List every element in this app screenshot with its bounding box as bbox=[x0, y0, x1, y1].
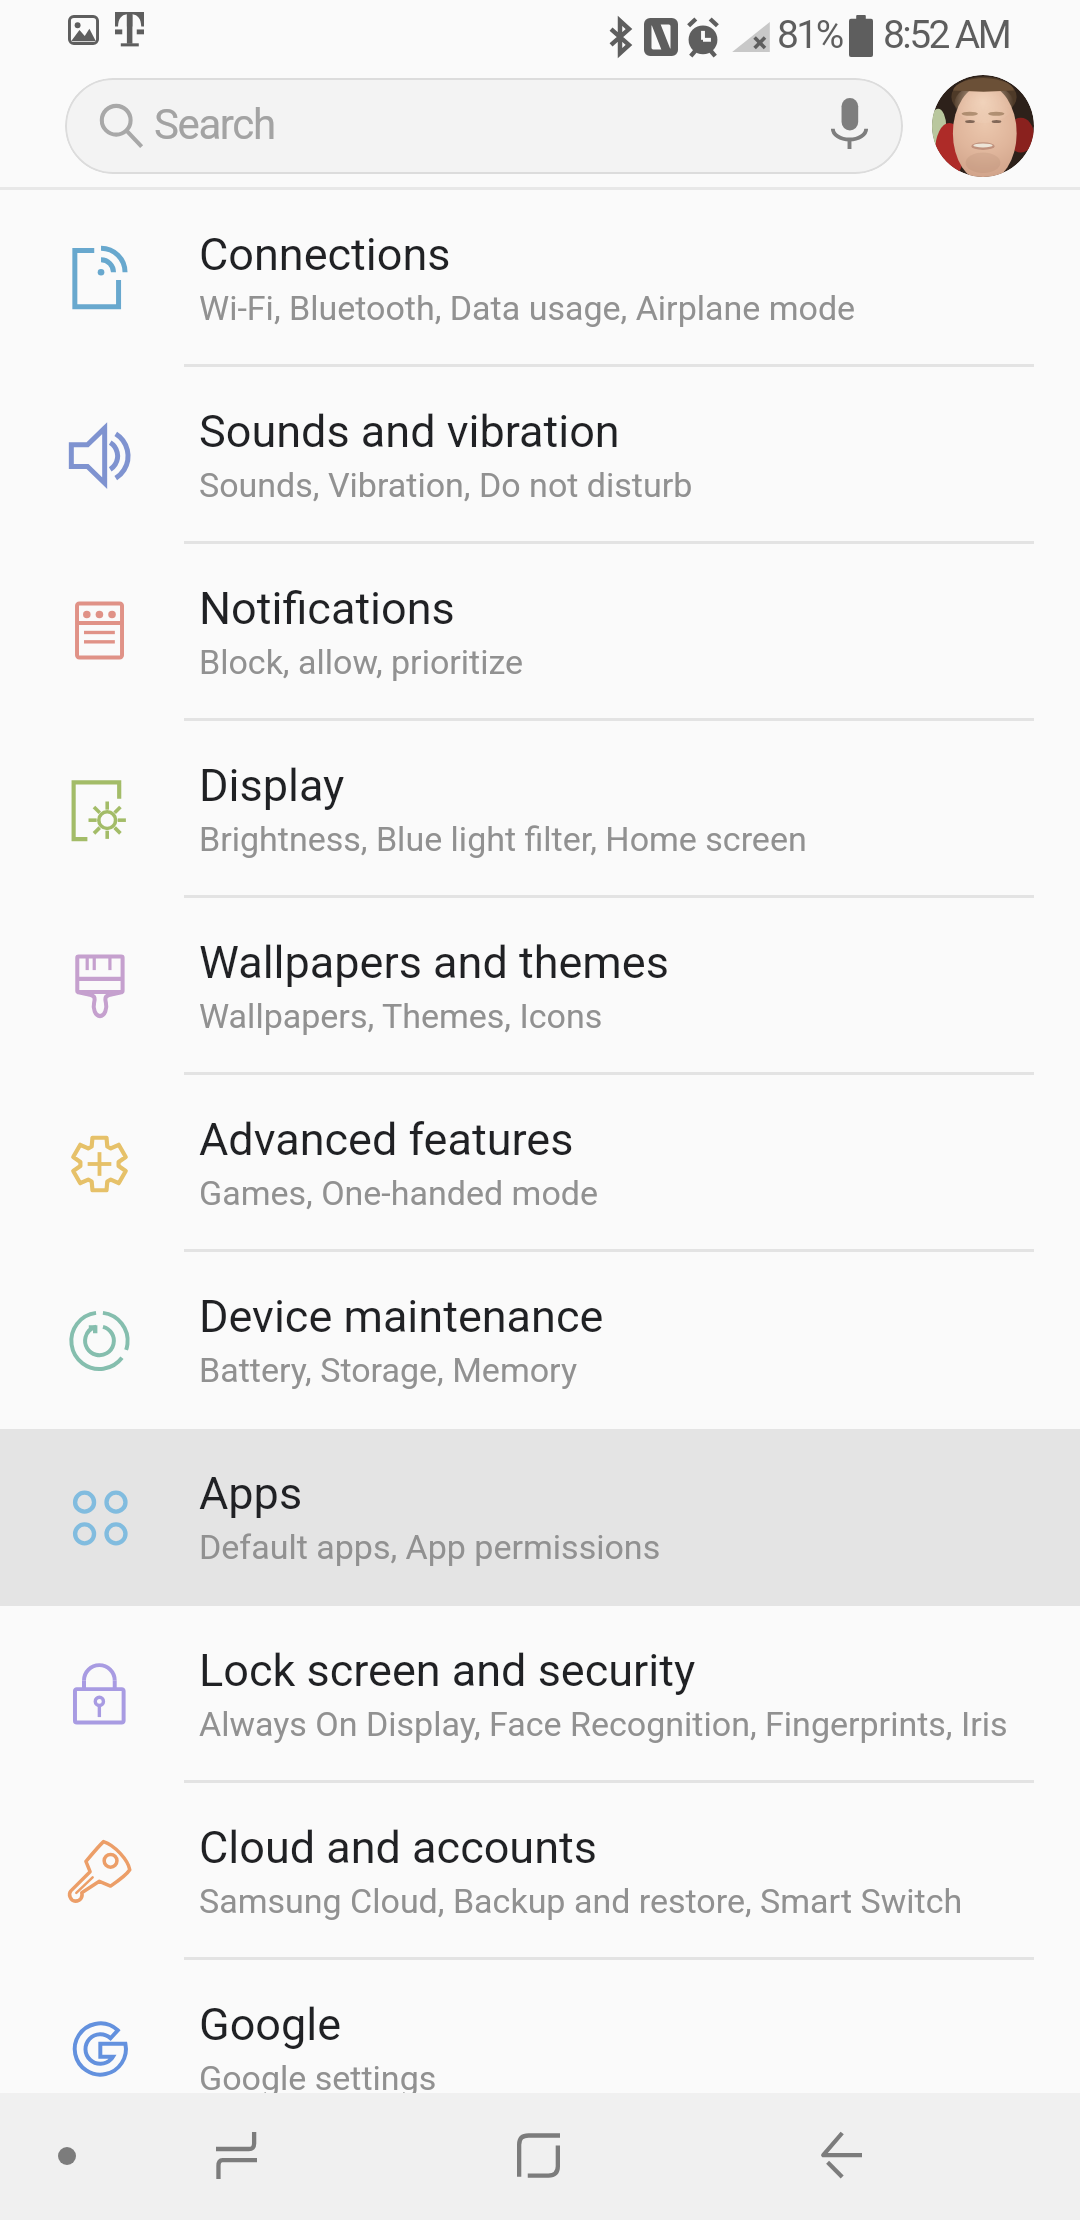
staticText: Apps bbox=[199, 1467, 303, 1520]
staticText: Samsung Cloud, Backup and restore, Smart… bbox=[199, 1881, 963, 1921]
staticText: Block, allow, prioritize bbox=[199, 642, 524, 682]
button[interactable]: Notifications bbox=[0, 544, 1080, 721]
button[interactable]: Google bbox=[0, 1960, 1080, 2137]
staticText: Connections bbox=[199, 228, 451, 281]
staticText: Search bbox=[154, 100, 275, 149]
button[interactable]: Device maintenance bbox=[0, 1252, 1080, 1429]
button[interactable]: Lock screen and security bbox=[0, 1606, 1080, 1783]
staticText: Default apps, App permissions bbox=[199, 1527, 661, 1567]
staticText: 8:52 AM bbox=[883, 12, 1010, 58]
staticText: Wi-Fi, Bluetooth, Data usage, Airplane m… bbox=[199, 288, 856, 328]
button[interactable]: Connections bbox=[0, 190, 1080, 367]
staticText: Wallpapers, Themes, Icons bbox=[199, 996, 603, 1036]
staticText: Notifications bbox=[199, 582, 455, 635]
button[interactable]: Sounds and vibration bbox=[0, 367, 1080, 544]
staticText: Brightness, Blue light filter, Home scre… bbox=[199, 819, 807, 859]
button[interactable]: Hide navigation bar bbox=[22, 2111, 112, 2201]
staticText: Sounds, Vibration, Do not disturb bbox=[199, 465, 693, 505]
staticText: Always On Display, Face Recognition, Fin… bbox=[199, 1704, 1008, 1744]
button[interactable]: Display bbox=[0, 721, 1080, 898]
staticText: Sounds and vibration bbox=[199, 405, 620, 458]
button[interactable]: Apps bbox=[0, 1429, 1080, 1606]
staticText: Wallpapers and themes bbox=[199, 936, 669, 989]
staticText: Display bbox=[199, 759, 345, 812]
button[interactable]: Home bbox=[492, 2109, 584, 2201]
staticText: Advanced features bbox=[199, 1113, 574, 1166]
staticText: Google settings bbox=[199, 2058, 437, 2098]
staticText: Battery, Storage, Memory bbox=[199, 1350, 578, 1390]
button[interactable]: Advanced features bbox=[0, 1075, 1080, 1252]
staticText: Cloud and accounts bbox=[199, 1821, 597, 1874]
staticText: Google bbox=[199, 1998, 342, 2051]
button[interactable]: Cloud and accounts bbox=[0, 1783, 1080, 1960]
staticText: Games, One-handed mode bbox=[199, 1173, 598, 1213]
staticText: 81% bbox=[777, 12, 842, 58]
button[interactable]: Recent apps bbox=[190, 2109, 282, 2201]
button[interactable]: Wallpapers and themes bbox=[0, 898, 1080, 1075]
staticText: Lock screen and security bbox=[199, 1644, 696, 1697]
button[interactable]: Back bbox=[796, 2109, 888, 2201]
button[interactable]: Account profile photo bbox=[932, 75, 1034, 177]
button[interactable]: Search bbox=[65, 78, 903, 174]
staticText: Device maintenance bbox=[199, 1290, 604, 1343]
